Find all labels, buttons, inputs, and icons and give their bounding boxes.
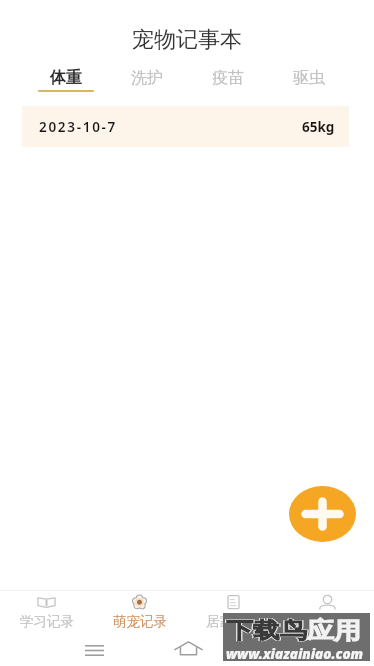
staticText: 驱虫 bbox=[293, 68, 325, 88]
button[interactable]: 2023-10-7 bbox=[22, 106, 349, 147]
button[interactable]: Recent apps bbox=[85, 645, 104, 656]
button[interactable]: Home bbox=[173, 641, 204, 656]
button[interactable]: 疫苗 bbox=[187, 62, 268, 96]
staticText: 我的 bbox=[314, 613, 341, 630]
staticText: 65kg bbox=[302, 118, 335, 136]
button[interactable]: 驱虫 bbox=[268, 62, 349, 96]
button[interactable]: 萌宠记录 bbox=[93, 591, 186, 633]
button[interactable]: 体重 bbox=[25, 62, 106, 96]
staticText: 下载鸟 bbox=[227, 616, 308, 644]
staticText: 学习记录 bbox=[20, 613, 74, 630]
button[interactable]: Add record bbox=[289, 486, 356, 542]
staticText: 下载鸟 bbox=[226, 616, 307, 644]
staticText: www.xiazainiao.com bbox=[226, 645, 373, 663]
button[interactable]: 我的 bbox=[280, 591, 374, 633]
staticText: 体重 bbox=[50, 68, 82, 88]
staticText: 萌宠记录 bbox=[113, 613, 167, 630]
button[interactable]: 居家记录 bbox=[186, 591, 280, 633]
staticText: 下载鸟 bbox=[225, 616, 306, 644]
staticText: 应用 bbox=[307, 616, 361, 644]
staticText: 居家记录 bbox=[206, 613, 260, 630]
button[interactable]: 学习记录 bbox=[0, 591, 93, 633]
staticText: 疫苗 bbox=[212, 68, 244, 88]
staticText: 2023-10-7 bbox=[39, 118, 117, 136]
button[interactable]: 洗护 bbox=[106, 62, 187, 96]
staticText: 洗护 bbox=[131, 68, 163, 88]
staticText: 宠物记事本 bbox=[132, 26, 242, 54]
